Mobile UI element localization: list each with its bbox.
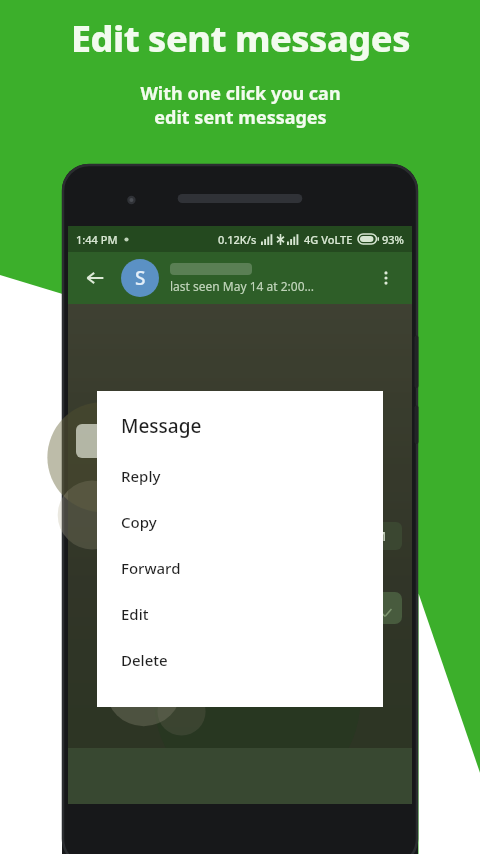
staticText: 0.12K/s [218, 232, 257, 247]
button[interactable]: Reply [97, 457, 383, 495]
staticText: Reply [121, 466, 161, 486]
staticText: Edit [121, 604, 149, 624]
staticText: 1:44 PM [76, 232, 118, 247]
button[interactable]: Edit [97, 595, 383, 633]
button[interactable]: Forward [97, 549, 383, 587]
button[interactable]: Hi [302, 592, 402, 624]
staticText: Message [121, 413, 202, 439]
staticText: last seen May 14 at 2:00… [170, 278, 315, 294]
staticText: Delete [121, 650, 168, 670]
staticText: 12:06 PM [334, 528, 386, 544]
staticText: With one click you can edit sent message… [140, 81, 341, 129]
staticText: Forward [121, 558, 181, 578]
button[interactable]: S [121, 259, 159, 297]
staticText: 93% [382, 232, 404, 247]
button[interactable]: Delete [97, 641, 383, 679]
staticText: Copy [121, 512, 157, 532]
button[interactable]: Copy [97, 503, 383, 541]
staticText: 4G VoLTE [304, 232, 353, 247]
staticText: Edit sent messages [71, 14, 410, 63]
button[interactable]: Back [78, 261, 112, 295]
button[interactable]: More options [370, 262, 402, 294]
staticText: S [135, 265, 146, 291]
